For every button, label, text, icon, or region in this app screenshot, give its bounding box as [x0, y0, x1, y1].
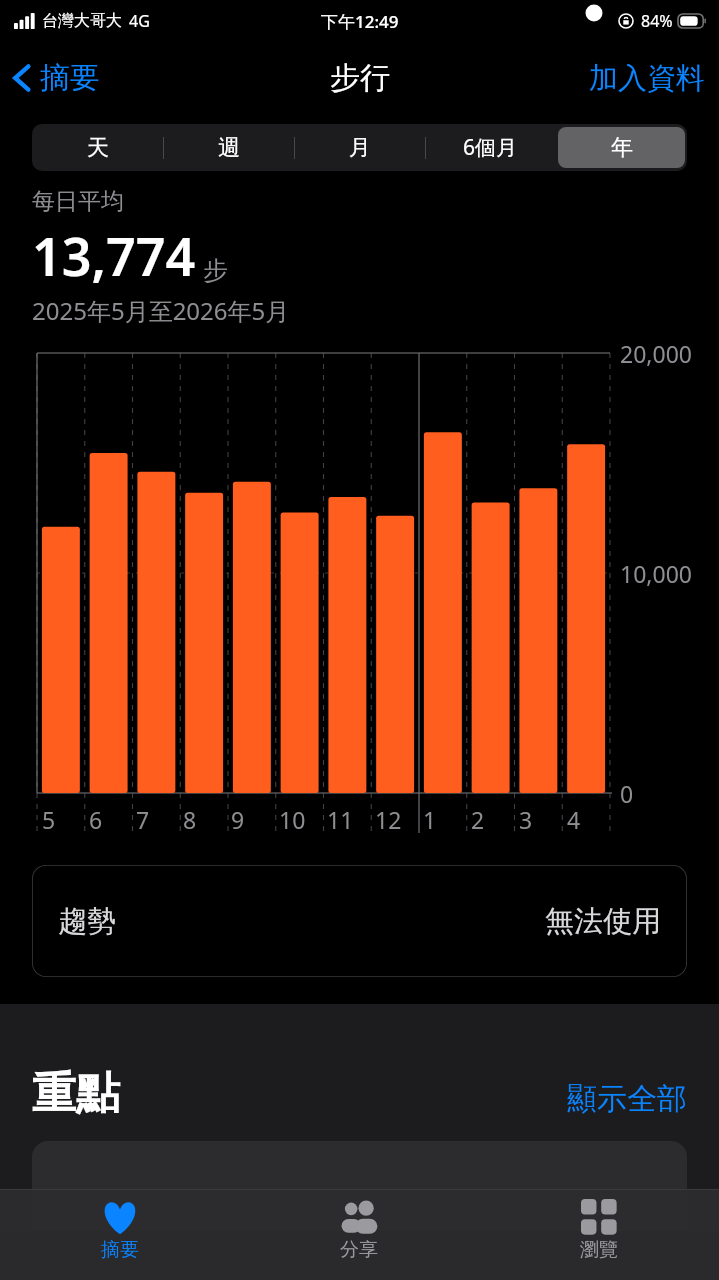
button[interactable]: 摘要 — [0, 53, 108, 103]
staticText: 10,000 — [620, 558, 692, 589]
staticText: 3 — [519, 804, 533, 835]
button[interactable]: 年 — [556, 124, 687, 171]
staticText: 週 — [218, 134, 240, 162]
staticText: 天 — [87, 134, 109, 162]
staticText: 7 — [136, 804, 150, 835]
staticText: 9 — [231, 804, 245, 835]
staticText: 12 — [375, 804, 402, 835]
staticText: 趨勢 — [58, 903, 116, 940]
button[interactable]: 趨勢 — [32, 865, 687, 977]
staticText: 8 — [183, 804, 197, 835]
staticText: 摘要 — [101, 1238, 139, 1262]
staticText: 10 — [279, 804, 306, 835]
staticText: 4 — [567, 804, 581, 835]
staticText: 2025年5月至2026年5月 — [32, 294, 290, 327]
staticText: 分享 — [340, 1238, 378, 1262]
staticText: 0 — [620, 778, 634, 809]
staticText: 4G — [129, 10, 150, 32]
staticText: 每日平均 — [32, 187, 124, 216]
staticText: 摘要 — [40, 59, 100, 97]
button[interactable]: 天 — [32, 124, 163, 171]
button[interactable]: 顯示全部 — [567, 1080, 687, 1121]
button[interactable]: 週 — [163, 124, 294, 171]
staticText: 加入資料 — [589, 60, 705, 97]
staticText: 6個月 — [463, 133, 518, 162]
staticText: 重點 — [32, 1066, 120, 1121]
staticText: 5 — [42, 804, 56, 835]
staticText: 年 — [611, 134, 633, 162]
staticText: 台灣大哥大 — [42, 11, 122, 31]
button[interactable]: Sharing — [239, 1190, 479, 1280]
button[interactable]: Browse — [479, 1190, 719, 1280]
staticText: 步 — [203, 255, 228, 286]
button[interactable] — [32, 1141, 687, 1231]
button[interactable]: 月 — [294, 124, 425, 171]
staticText: 2 — [471, 804, 485, 835]
staticText: 瀏覽 — [580, 1238, 618, 1262]
staticText: 11 — [327, 804, 354, 835]
staticText: 1 — [423, 804, 437, 835]
button[interactable]: 加入資料 — [575, 52, 719, 105]
staticText: 月 — [349, 134, 371, 162]
staticText: 步行 — [330, 59, 390, 97]
button[interactable]: Summary — [0, 1190, 239, 1280]
staticText: 20,000 — [620, 338, 692, 369]
staticText: 84% — [641, 10, 673, 32]
staticText: 6 — [89, 804, 103, 835]
staticText: 下午12:49 — [321, 10, 399, 33]
staticText: 13,774 — [32, 220, 196, 291]
staticText: 顯示全部 — [567, 1080, 687, 1118]
staticText: 無法使用 — [545, 903, 661, 940]
button[interactable]: 6個月 — [425, 124, 556, 171]
